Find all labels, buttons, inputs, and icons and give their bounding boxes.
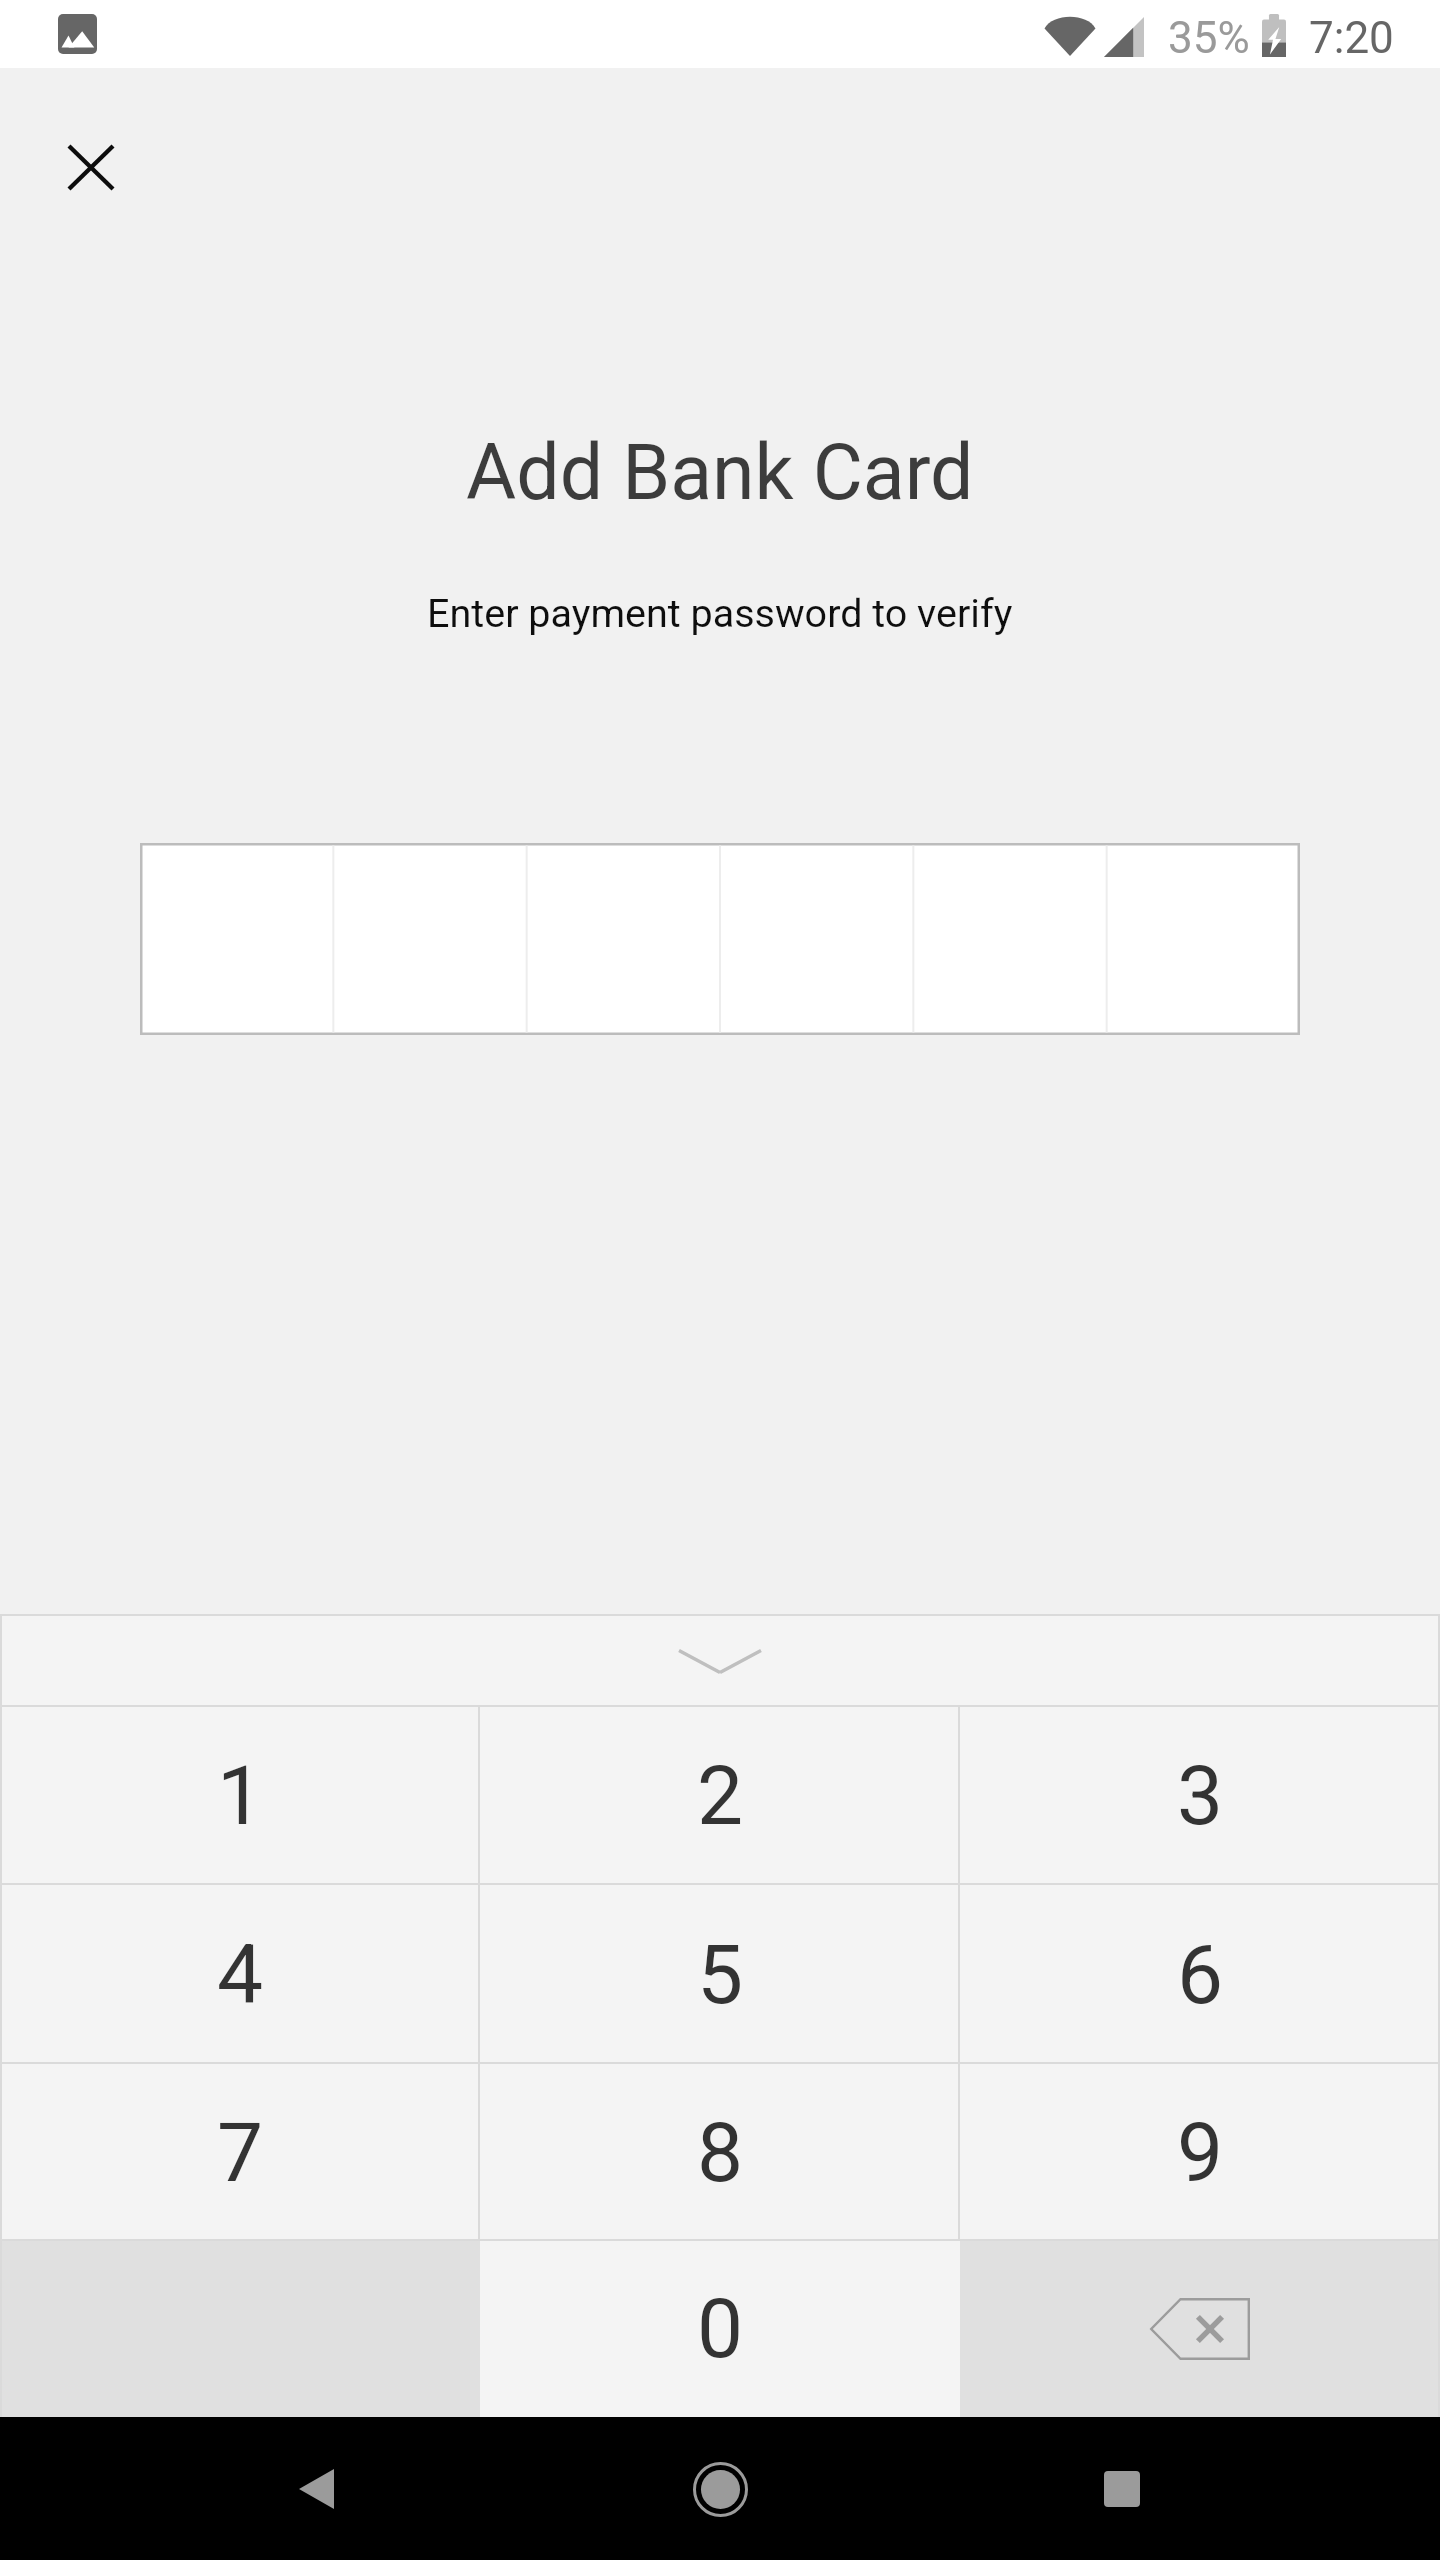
button[interactable]: Home — [660, 2429, 780, 2549]
button[interactable] — [140, 843, 1300, 1035]
button[interactable]: 0 — [480, 2241, 960, 2417]
button[interactable]: Close — [35, 111, 147, 223]
button[interactable]: 4 — [0, 1885, 480, 2064]
staticText: 8 — [697, 2105, 744, 2201]
button[interactable]: 1 — [0, 1707, 480, 1885]
staticText: 3 — [1177, 1748, 1224, 1844]
staticText: 5 — [697, 1927, 744, 2023]
button[interactable]: 3 — [960, 1707, 1440, 1885]
button[interactable]: Back — [256, 2429, 376, 2549]
button[interactable]: Recent apps — [1062, 2429, 1182, 2549]
button[interactable]: Backspace — [960, 2241, 1440, 2417]
button[interactable]: 6 — [960, 1885, 1440, 2064]
staticText: 4 — [217, 1927, 264, 2023]
staticText: 2 — [697, 1748, 744, 1844]
staticText: 0 — [697, 2281, 744, 2377]
staticText: 7:20 — [1309, 12, 1394, 64]
button[interactable]: Hide keyboard — [0, 1614, 1440, 1707]
button[interactable]: 8 — [480, 2064, 960, 2241]
staticText: Enter payment password to verify — [427, 590, 1013, 636]
button[interactable]: 9 — [960, 2064, 1440, 2241]
button[interactable]: 7 — [0, 2064, 480, 2241]
button[interactable]: 2 — [480, 1707, 960, 1885]
button[interactable]: 5 — [480, 1885, 960, 2064]
staticText: 9 — [1177, 2105, 1224, 2201]
staticText: Add Bank Card — [466, 428, 974, 518]
staticText: 35% — [1168, 12, 1250, 64]
staticText: 6 — [1177, 1927, 1224, 2023]
staticText: 1 — [217, 1748, 264, 1844]
staticText: 7 — [217, 2105, 264, 2201]
